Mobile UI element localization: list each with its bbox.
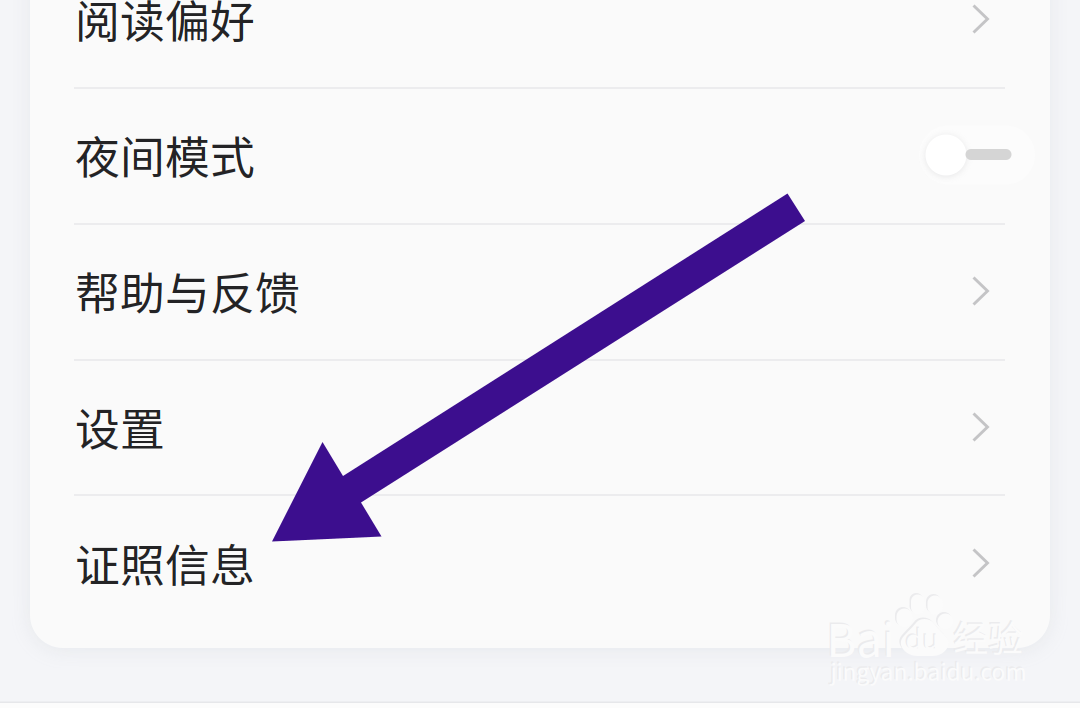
button[interactable]: 设置 xyxy=(30,359,1050,495)
staticText: jingyan.baidu.com xyxy=(829,653,1025,686)
button[interactable]: 帮助与反馈 xyxy=(30,223,1050,359)
button[interactable]: 阅读偏好 xyxy=(30,0,1050,87)
staticText: 帮助与反馈 xyxy=(75,258,300,323)
staticText: du xyxy=(905,617,939,658)
staticText: 设置 xyxy=(75,394,165,459)
staticText: 经验 xyxy=(953,611,1023,662)
staticText: 经验 xyxy=(952,610,1022,660)
button[interactable]: 证照信息 xyxy=(30,495,1050,631)
staticText: 证照信息 xyxy=(75,530,255,595)
staticText: 阅读偏好 xyxy=(75,0,255,51)
staticText: Bai xyxy=(825,603,893,669)
staticText: jingyan.baidu.com xyxy=(830,654,1026,687)
button[interactable]: 夜间模式，已关闭 xyxy=(919,125,1035,184)
staticText: 夜间模式 xyxy=(75,122,255,187)
staticText: Bai xyxy=(826,604,894,670)
staticText: du xyxy=(904,616,938,656)
